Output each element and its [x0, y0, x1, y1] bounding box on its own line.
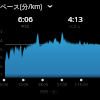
button[interactable]: ペース(分/km): [0, 0, 54, 12]
button[interactable]: 6:06: [0, 14, 50, 28]
staticText: 3:40: [0, 29, 4, 34]
staticText: 4:13: [68, 14, 83, 24]
button[interactable]: 4:13: [50, 14, 100, 28]
staticText: 1:16:00: [72, 82, 90, 87]
staticText: 6:06: [18, 14, 33, 24]
staticText: 0:00: [0, 82, 13, 87]
staticText: 19:00: [14, 82, 32, 87]
other: Change metric: [46, 2, 54, 10]
staticText: 7:00: [0, 72, 4, 77]
staticText: ペース(分/km): [0, 2, 43, 11]
staticText: 5:40: [0, 55, 4, 60]
staticText: 平均: [21, 24, 29, 28]
staticText: 5:00: [0, 47, 4, 52]
staticText: 57:00: [53, 82, 71, 87]
staticText: 38:00: [34, 82, 52, 87]
staticText: 時間（分）: [0, 89, 100, 94]
staticText: ベスト: [69, 24, 82, 28]
staticText: 6:20: [0, 64, 4, 69]
staticText: 4:20: [0, 38, 4, 43]
